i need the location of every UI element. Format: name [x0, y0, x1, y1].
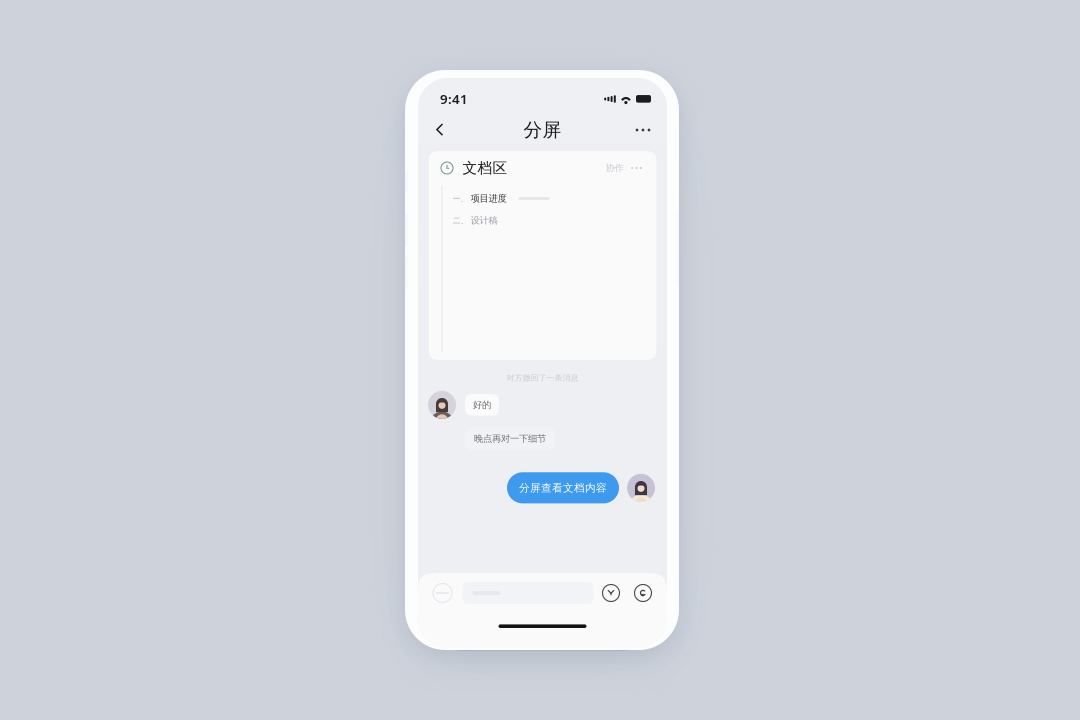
button[interactable]: More options — [630, 114, 656, 146]
button[interactable]: Back — [427, 114, 453, 146]
staticText: 晚点再对一下细节 — [474, 433, 546, 444]
button[interactable]: Emoji — [601, 583, 620, 602]
button[interactable]: More actions — [620, 583, 652, 602]
staticText: 一、 — [452, 194, 468, 203]
staticText: 对方撤回了一条消息 — [506, 373, 578, 383]
staticText: 9:41 — [440, 90, 468, 108]
staticText: 好的 — [473, 399, 491, 411]
staticText: 分屏查看文档内容 — [519, 481, 607, 494]
staticText: 项目进度 — [470, 193, 506, 204]
staticText: 设计稿 — [470, 215, 497, 226]
button[interactable]: Voice input — [431, 582, 453, 604]
staticText: 二、 — [452, 216, 468, 225]
staticText: 文档区 — [462, 159, 507, 177]
staticText: 协作 — [605, 162, 623, 174]
staticText: 分屏 — [523, 118, 561, 141]
button[interactable]: Document options — [623, 158, 649, 178]
